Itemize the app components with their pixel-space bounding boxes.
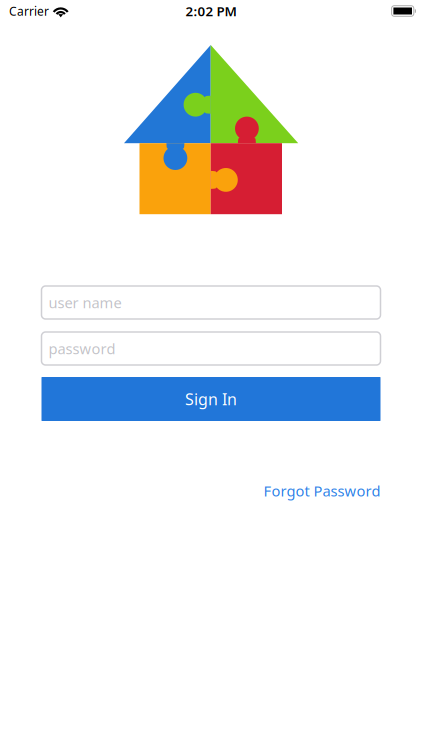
staticText: password bbox=[48, 339, 115, 358]
staticText: Sign In bbox=[185, 388, 237, 410]
staticText: Carrier bbox=[9, 3, 49, 19]
button[interactable]: password bbox=[41, 332, 380, 365]
button[interactable]: Forgot Password bbox=[263, 481, 380, 500]
staticText: user name bbox=[48, 293, 121, 312]
button[interactable]: Sign In bbox=[41, 377, 380, 421]
button[interactable]: user name bbox=[41, 286, 380, 319]
staticText: Forgot Password bbox=[263, 481, 380, 500]
staticText: 2:02 PM bbox=[185, 2, 236, 20]
